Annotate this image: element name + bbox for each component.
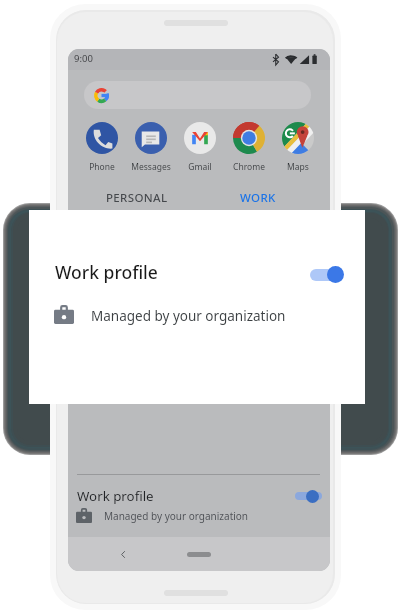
button[interactable]: Work profile bbox=[29, 210, 365, 404]
button[interactable]: Maps bbox=[273, 119, 322, 171]
staticText: Messages bbox=[131, 161, 171, 173]
staticText: Managed by your organization bbox=[91, 307, 286, 325]
staticText: 9:00 bbox=[74, 52, 93, 65]
staticText: Phone bbox=[89, 161, 115, 173]
staticText: PERSONAL bbox=[106, 190, 168, 206]
staticText: Work profile bbox=[55, 260, 158, 284]
staticText: Chrome bbox=[233, 161, 265, 173]
button[interactable]: Gmail bbox=[175, 119, 224, 171]
button[interactable]: Back bbox=[118, 549, 129, 560]
button[interactable]: Phone bbox=[77, 119, 126, 171]
button[interactable]: Messages bbox=[126, 119, 175, 171]
button[interactable]: Work profile bbox=[77, 481, 321, 526]
staticText: Work profile bbox=[77, 487, 154, 505]
button[interactable]: Search bbox=[84, 81, 311, 109]
button[interactable]: Chrome bbox=[224, 119, 273, 171]
staticText: Maps bbox=[287, 161, 309, 173]
button[interactable]: WORK bbox=[198, 182, 318, 214]
staticText: Gmail bbox=[188, 161, 212, 173]
button[interactable]: Home bbox=[187, 552, 211, 557]
button[interactable]: PERSONAL bbox=[77, 182, 197, 214]
staticText: Managed by your organization bbox=[104, 509, 249, 523]
button[interactable] bbox=[306, 262, 348, 286]
button[interactable] bbox=[292, 486, 323, 506]
staticText: WORK bbox=[240, 190, 276, 206]
